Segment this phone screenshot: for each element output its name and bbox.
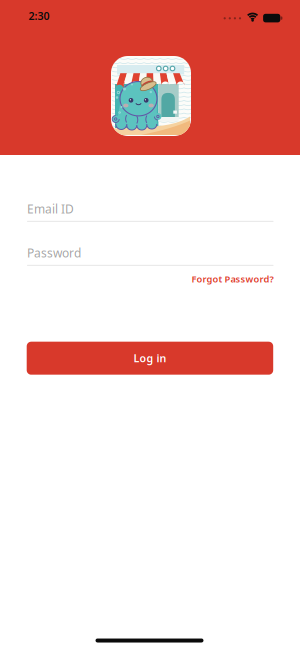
button[interactable]: Password xyxy=(27,245,273,266)
button[interactable]: Email ID xyxy=(27,201,273,222)
button[interactable]: Log in xyxy=(27,342,273,375)
button[interactable]: Forgot Password? xyxy=(191,273,273,285)
staticText: 2:30 xyxy=(28,9,49,23)
staticText: Password xyxy=(27,245,81,261)
staticText: Email ID xyxy=(27,201,74,217)
staticText: Forgot Password? xyxy=(191,273,273,285)
staticText: Log in xyxy=(133,351,166,365)
